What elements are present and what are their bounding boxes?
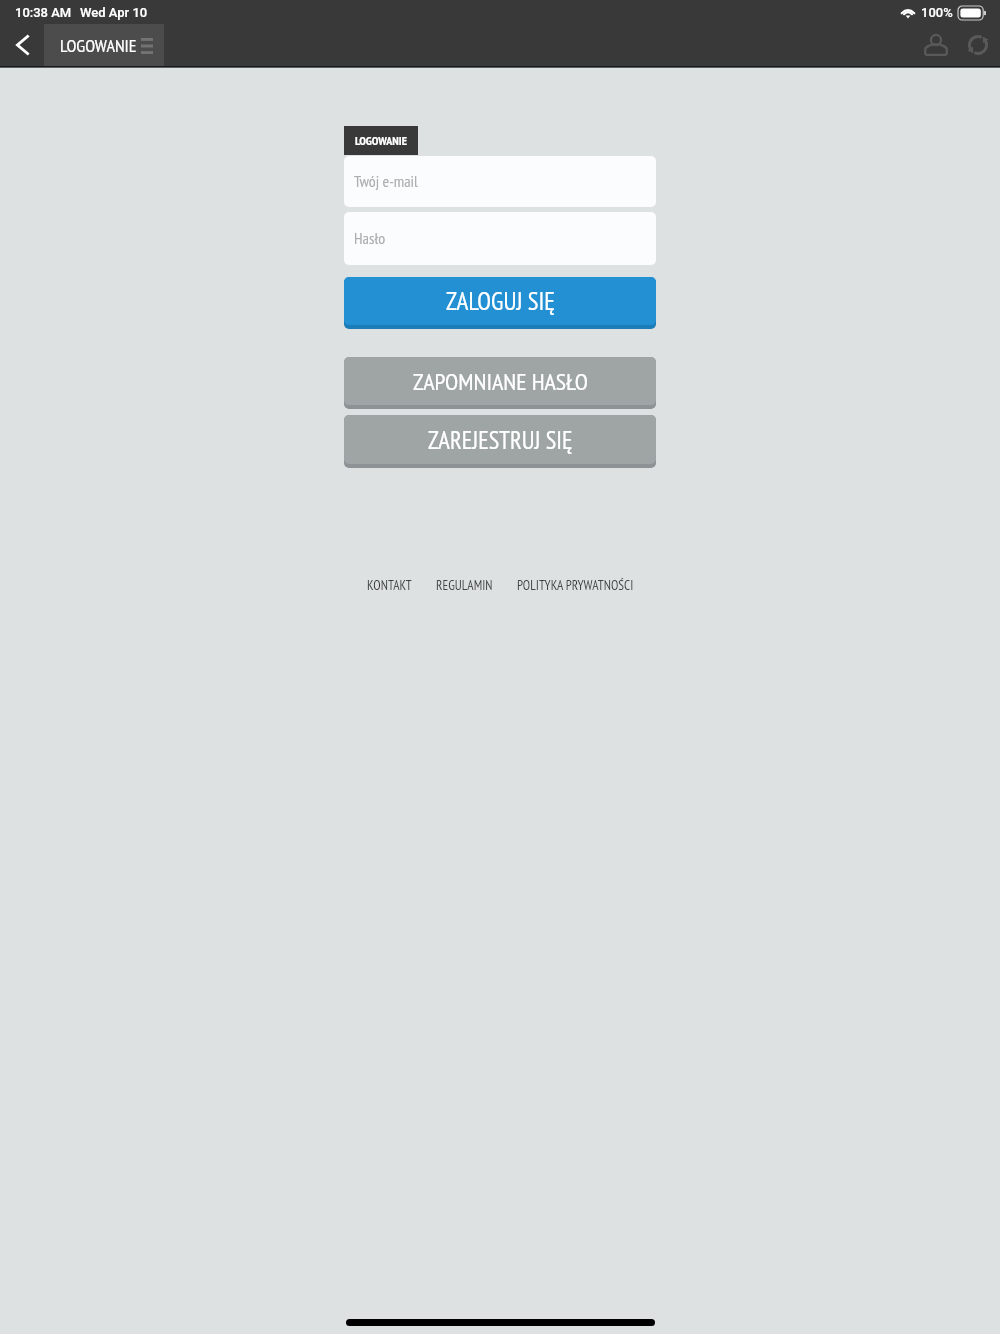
staticText: 100%	[921, 5, 953, 20]
button[interactable]: Hasło	[344, 212, 656, 265]
button[interactable]: Refresh	[957, 24, 999, 66]
button[interactable]: LOGOWANIE	[44, 24, 164, 66]
staticText: KONTAKT	[367, 576, 412, 593]
staticText: Twój e-mail	[354, 171, 418, 192]
button[interactable]: KONTAKT	[365, 572, 414, 597]
staticText: LOGOWANIE	[60, 34, 137, 57]
button[interactable]: POLITYKA PRYWATNOŚCI	[515, 572, 636, 597]
staticText: ZAREJESTRUJ SIĘ	[428, 424, 573, 456]
staticText: LOGOWANIE	[355, 133, 407, 149]
button[interactable]: Back	[0, 24, 44, 66]
button[interactable]: Account	[915, 24, 957, 66]
button[interactable]: Twój e-mail	[344, 156, 656, 207]
staticText: ZAPOMNIANE HASŁO	[413, 366, 588, 397]
button[interactable]: ZAREJESTRUJ SIĘ	[344, 415, 656, 468]
button[interactable]: REGULAMIN	[434, 572, 495, 597]
button[interactable]: ZAPOMNIANE HASŁO	[344, 357, 656, 409]
staticText: Hasło	[354, 228, 386, 249]
staticText: Wed Apr 10	[80, 5, 148, 20]
button[interactable]: ZALOGUJ SIĘ	[344, 277, 656, 329]
staticText: 10:38 AM	[15, 5, 72, 20]
staticText: REGULAMIN	[436, 576, 493, 593]
staticText: ZALOGUJ SIĘ	[446, 285, 555, 317]
staticText: POLITYKA PRYWATNOŚCI	[517, 576, 634, 593]
